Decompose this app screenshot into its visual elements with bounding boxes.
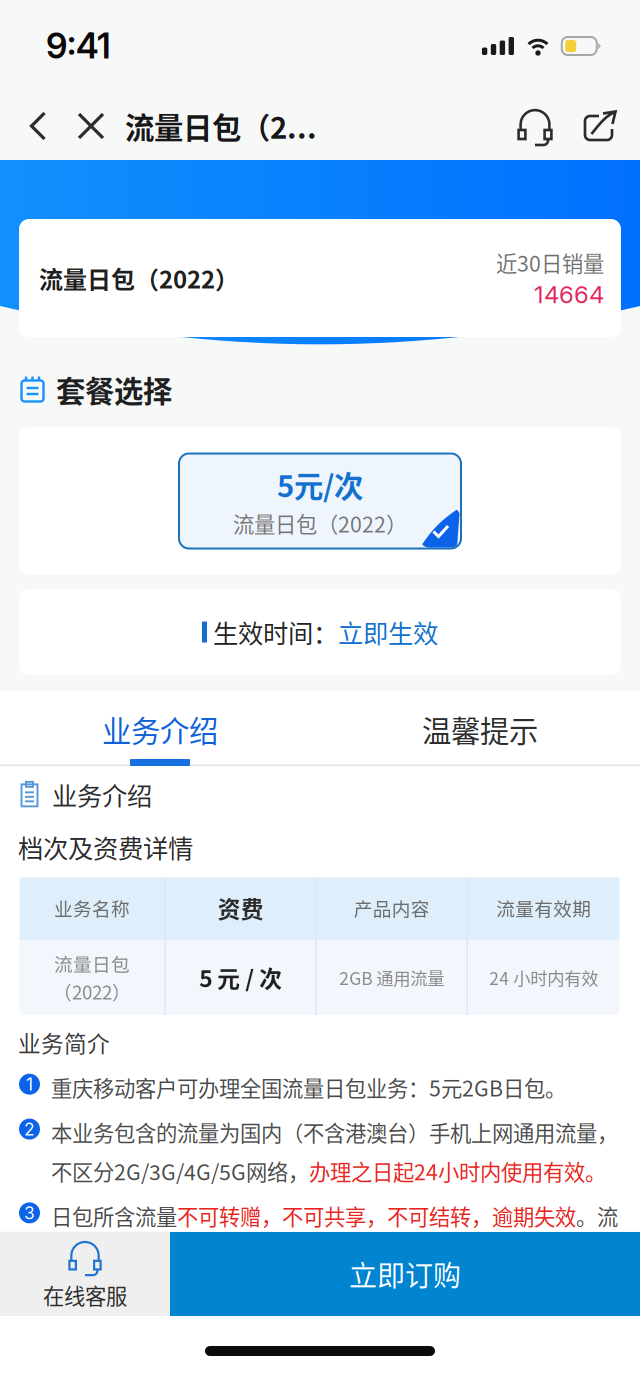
staticText: 不区分2G/3G/4G/5G网络， bbox=[51, 1155, 309, 1186]
staticText: 重庆移动客户可办理全国流量日包业务：5元2GB日包。 bbox=[51, 1072, 566, 1103]
staticText: 业务简介 bbox=[18, 1026, 110, 1059]
staticText: 产品内容 bbox=[354, 894, 430, 921]
staticText: 业务名称 bbox=[54, 894, 130, 921]
staticText: 2GB 通用流量 bbox=[339, 965, 444, 990]
staticText: 24 小时内有效 bbox=[489, 965, 598, 990]
staticText: 3 bbox=[24, 1202, 35, 1223]
button[interactable]: 流量日包（2022） bbox=[0, 160, 640, 337]
staticText: 立即订购 bbox=[349, 1254, 461, 1294]
staticText: 业务介绍 bbox=[52, 776, 152, 813]
staticText: 套餐选择 bbox=[56, 368, 172, 411]
button[interactable]: 分享 bbox=[562, 100, 620, 152]
staticText: 流量日包（2022） bbox=[233, 508, 407, 539]
button[interactable]: 在线客服 bbox=[508, 99, 562, 152]
button[interactable]: 业务介绍 bbox=[0, 691, 320, 766]
staticText: 业务介绍 bbox=[102, 708, 218, 750]
staticText: 1 bbox=[26, 1074, 33, 1095]
staticText: 流量有效期 bbox=[496, 894, 591, 921]
staticText: 本业务包含的流量为国内（不含港澳台）手机上网通用流量， bbox=[51, 1117, 618, 1147]
button[interactable]: 5元/次 bbox=[19, 427, 621, 575]
staticText: 2 bbox=[24, 1119, 35, 1140]
staticText: 5 元 / 次 bbox=[199, 961, 282, 994]
staticText: 办理之日起24小时内使用有效。 bbox=[309, 1155, 606, 1186]
staticText: 5元/次 bbox=[277, 463, 363, 506]
staticText: 流量日包（2... bbox=[125, 105, 317, 147]
staticText: 日包所含流量 bbox=[51, 1200, 177, 1231]
staticText: 资费 bbox=[218, 891, 264, 924]
button[interactable]: 返回 bbox=[0, 98, 66, 154]
staticText: 近30日销量 bbox=[496, 247, 604, 278]
staticText: 。流 bbox=[576, 1200, 618, 1231]
staticText: （2022） bbox=[53, 978, 131, 1005]
staticText: 在线客服 bbox=[43, 1279, 127, 1310]
staticText: 流量日包（2022） bbox=[39, 261, 239, 295]
button[interactable]: 立即订购 bbox=[170, 1232, 640, 1316]
staticText: 立即生效 bbox=[338, 614, 438, 650]
staticText: 9:41 bbox=[46, 25, 111, 67]
staticText: 14664 bbox=[534, 280, 604, 309]
staticText: 流量日包 bbox=[54, 950, 130, 977]
staticText: 档次及资费详情 bbox=[18, 829, 193, 865]
button[interactable]: 在线客服 bbox=[0, 1232, 170, 1316]
staticText: 不可转赠，不可共享，不可结转，逾期失效 bbox=[177, 1200, 576, 1231]
staticText: 生效时间： bbox=[207, 614, 338, 650]
button[interactable]: 温馨提示 bbox=[320, 691, 640, 766]
button[interactable]: 关闭 bbox=[66, 100, 116, 152]
staticText: 温馨提示 bbox=[422, 708, 538, 750]
